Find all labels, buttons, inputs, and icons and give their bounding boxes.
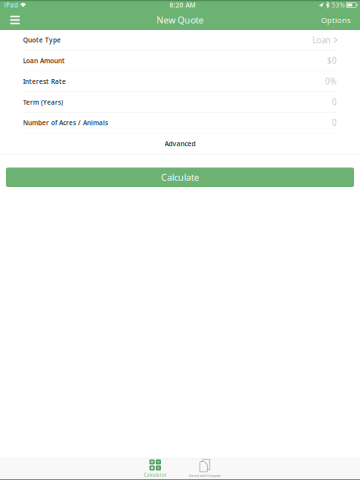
- staticText: 0%: [325, 76, 337, 87]
- staticText: Advanced: [164, 139, 195, 148]
- staticText: Loan: [312, 35, 330, 45]
- button[interactable]: Loan Amount: [0, 51, 360, 71]
- button[interactable]: Options: [315, 10, 355, 30]
- staticText: New Quote: [156, 14, 203, 26]
- staticText: Calculator: [144, 472, 167, 478]
- staticText: 53%: [331, 1, 344, 9]
- button[interactable]: Menu: [2, 10, 28, 30]
- button[interactable]: Interest Rate: [0, 71, 360, 92]
- staticText: Options: [321, 15, 351, 25]
- staticText: Loan Amount: [23, 56, 65, 65]
- staticText: Calculate: [161, 171, 199, 183]
- staticText: Term (Years): [23, 98, 63, 106]
- staticText: Saved and Compare: [189, 473, 221, 478]
- staticText: 0: [332, 97, 337, 108]
- staticText: Interest Rate: [23, 77, 66, 86]
- staticText: Number of Acres / Animals: [23, 118, 108, 127]
- button[interactable]: Saved and Compare: [180, 458, 230, 479]
- staticText: 0: [332, 117, 337, 128]
- button[interactable]: Advanced: [0, 133, 360, 154]
- staticText: 8:20 AM: [169, 1, 195, 9]
- button[interactable]: Calculator: [130, 458, 180, 479]
- button[interactable]: Quote Type: [0, 30, 360, 51]
- button[interactable]: Term (Years): [0, 92, 360, 113]
- button[interactable]: Calculate: [6, 167, 354, 187]
- button[interactable]: Number of Acres / Animals: [0, 113, 360, 133]
- staticText: iPad: [4, 1, 18, 9]
- staticText: Quote Type: [23, 36, 61, 44]
- staticText: $0: [327, 55, 337, 66]
